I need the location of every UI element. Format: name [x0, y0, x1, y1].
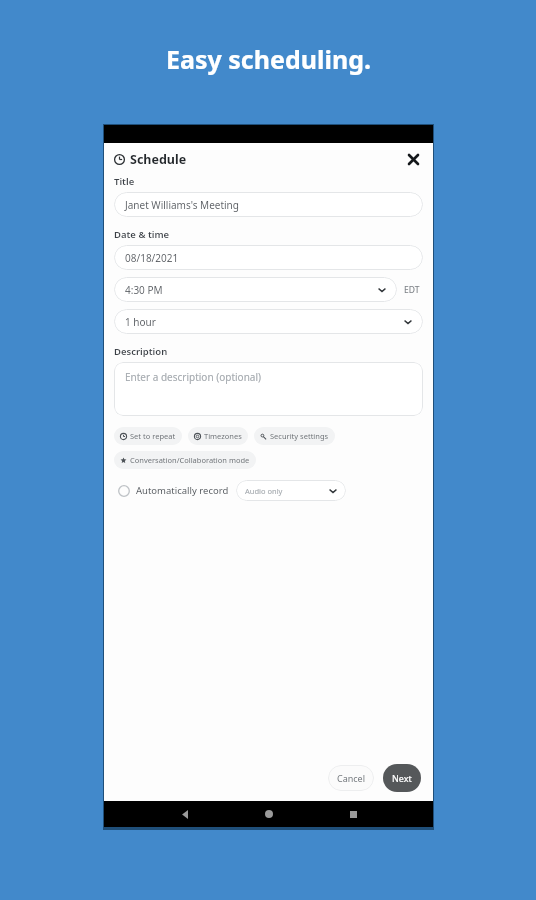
button[interactable]: Recents: [343, 804, 363, 824]
button[interactable]: 1 hour: [114, 309, 423, 334]
staticText: 4:30 PM: [125, 283, 163, 297]
button[interactable]: Back: [175, 804, 195, 824]
staticText: Timezones: [204, 431, 242, 441]
staticText: Janet Williams's Meeting: [125, 198, 239, 212]
button[interactable]: Home: [259, 804, 279, 824]
button[interactable]: Next: [383, 764, 421, 792]
staticText: Description: [114, 345, 168, 358]
staticText: Date & time: [114, 228, 170, 241]
button[interactable]: Set to repeat: [114, 427, 182, 445]
button[interactable]: Audio only: [236, 480, 346, 501]
staticText: EDT: [404, 284, 420, 296]
staticText: Audio only: [245, 486, 283, 496]
staticText: Set to repeat: [130, 431, 176, 441]
staticText: Next: [392, 772, 412, 784]
staticText: Schedule: [130, 151, 187, 168]
staticText: Easy scheduling.: [166, 42, 371, 76]
staticText: Security settings: [270, 431, 329, 441]
staticText: 1 hour: [125, 315, 156, 329]
staticText: Automatically record: [136, 484, 229, 497]
staticText: Conversation/Collaboration mode: [130, 455, 250, 465]
button[interactable]: 4:30 PM: [114, 277, 397, 302]
button[interactable]: Cancel: [328, 765, 374, 791]
button[interactable]: Close: [401, 147, 425, 171]
staticText: Cancel: [337, 772, 366, 784]
button[interactable]: Enter a description (optional): [114, 362, 423, 416]
button[interactable]: Timezones: [188, 427, 248, 445]
button[interactable]: Automatically record toggle: [114, 481, 134, 501]
button[interactable]: Security settings: [254, 427, 335, 445]
button[interactable]: Conversation/Collaboration mode: [114, 451, 256, 469]
staticText: Enter a description (optional): [125, 370, 261, 384]
staticText: 08/18/2021: [125, 251, 179, 265]
button[interactable]: Janet Williams's Meeting: [114, 192, 423, 217]
button[interactable]: 08/18/2021: [114, 245, 423, 270]
staticText: Title: [114, 175, 135, 188]
